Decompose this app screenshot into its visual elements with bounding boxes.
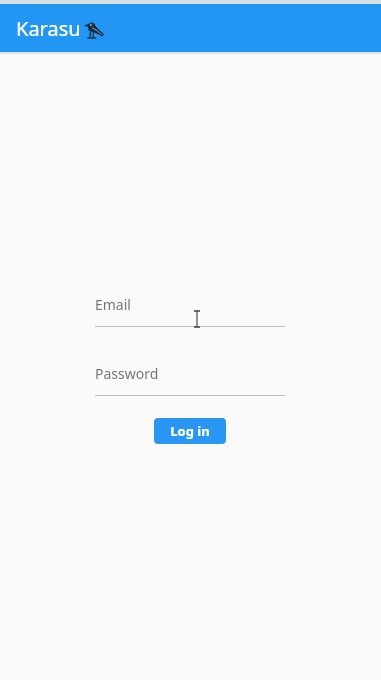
button[interactable]: Password (95, 364, 285, 396)
button[interactable]: Email (95, 295, 285, 327)
staticText: Password (95, 364, 159, 383)
staticText: Karasu (16, 15, 81, 42)
button[interactable]: Log in (154, 418, 226, 444)
other: Karasu crow (83, 19, 105, 41)
staticText: Email (95, 295, 131, 314)
staticText: Log in (170, 422, 210, 440)
